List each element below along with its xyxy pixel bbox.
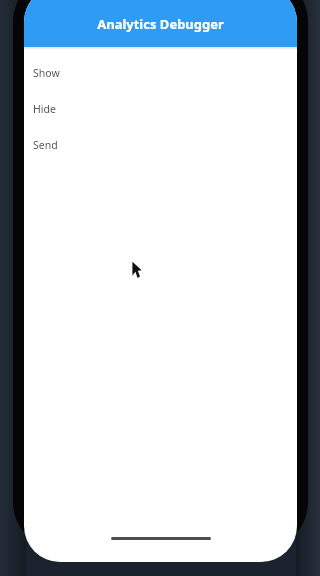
- staticText: Analytics Debugger: [97, 15, 224, 33]
- staticText: Show: [33, 66, 60, 80]
- button[interactable]: Hide: [24, 91, 297, 127]
- staticText: Hide: [33, 102, 56, 116]
- button[interactable]: Show: [24, 55, 297, 91]
- button[interactable]: Send: [24, 127, 297, 163]
- staticText: Send: [33, 138, 58, 152]
